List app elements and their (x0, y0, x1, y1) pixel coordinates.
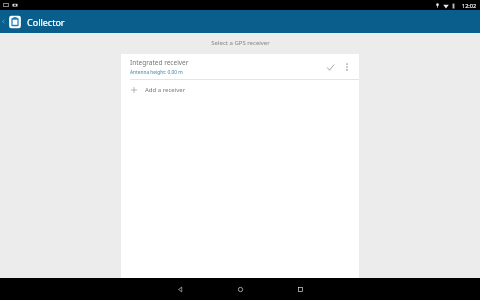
button[interactable]: Home (210, 278, 270, 300)
button[interactable]: Back (150, 278, 210, 300)
button[interactable]: Recent apps (270, 278, 330, 300)
staticText: Select a GPS receiver (211, 39, 270, 47)
button[interactable]: Back (0, 10, 7, 33)
button[interactable]: Collector app icon (7, 14, 23, 30)
button[interactable]: Integrated receiver (121, 54, 359, 79)
button[interactable]: Selected (323, 60, 337, 74)
staticText: Add a receiver (145, 86, 186, 94)
button[interactable]: More options (340, 60, 354, 74)
staticText: Antenna height: 0.00 m (130, 69, 183, 76)
staticText: 12:02 (462, 2, 477, 9)
staticText: Integrated receiver (130, 58, 189, 67)
button[interactable]: Add a receiver (121, 80, 359, 100)
staticText: Collector (27, 16, 65, 28)
